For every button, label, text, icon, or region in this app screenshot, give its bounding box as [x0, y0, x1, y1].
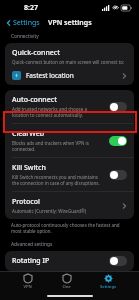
button[interactable]: Settings	[4, 17, 42, 29]
button[interactable]: Kill Switch	[5, 158, 134, 191]
button[interactable]: Rotating IP	[5, 251, 134, 271]
button[interactable]: Fastest location	[5, 69, 134, 85]
staticText: Protocol	[12, 197, 40, 207]
staticText: 8:27	[24, 3, 38, 13]
staticText: Add trusted networks and choose a locati…	[12, 106, 104, 118]
staticText: Kill Switch reconnects you and maintains…	[12, 174, 104, 186]
button[interactable]: Auto-connect	[5, 90, 134, 123]
staticText: Settings	[100, 284, 116, 290]
staticText: Rotating IP	[12, 256, 50, 266]
staticText: One	[62, 284, 71, 290]
staticText: Connectivity	[11, 33, 39, 40]
staticText: Advanced settings	[11, 241, 53, 248]
button[interactable]: ClearWeb	[5, 124, 134, 157]
button[interactable]: Toggle off	[109, 102, 127, 112]
staticText: Auto-connect	[12, 95, 57, 105]
staticText: Blocks ads and trackers when VPN is conn…	[12, 140, 104, 152]
staticText: Automatic (Currently: WireGuard®)	[12, 208, 87, 214]
button[interactable]: Toggle off	[109, 170, 127, 180]
staticText: VPN	[23, 284, 32, 290]
staticText: Settings	[13, 18, 40, 28]
staticText: Auto-protocol continuously chooses the f…	[11, 222, 128, 234]
button[interactable]: VPN	[17, 273, 38, 291]
button[interactable]: Protocol	[5, 192, 134, 219]
staticText: ClearWeb	[12, 129, 45, 139]
staticText: Kill Switch	[12, 163, 46, 173]
staticText: Quick-connect button on main screen will…	[12, 59, 125, 65]
button[interactable]: Toggle on	[109, 136, 127, 146]
button[interactable]: One	[56, 273, 77, 291]
button[interactable]: Toggle off	[109, 256, 127, 266]
button[interactable]: Settings	[94, 273, 122, 291]
staticText: Fastest location	[26, 71, 74, 80]
button[interactable]: Quick-connect	[5, 43, 134, 69]
staticText: VPN settings	[48, 18, 92, 28]
staticText: Quick-connect	[12, 48, 60, 58]
